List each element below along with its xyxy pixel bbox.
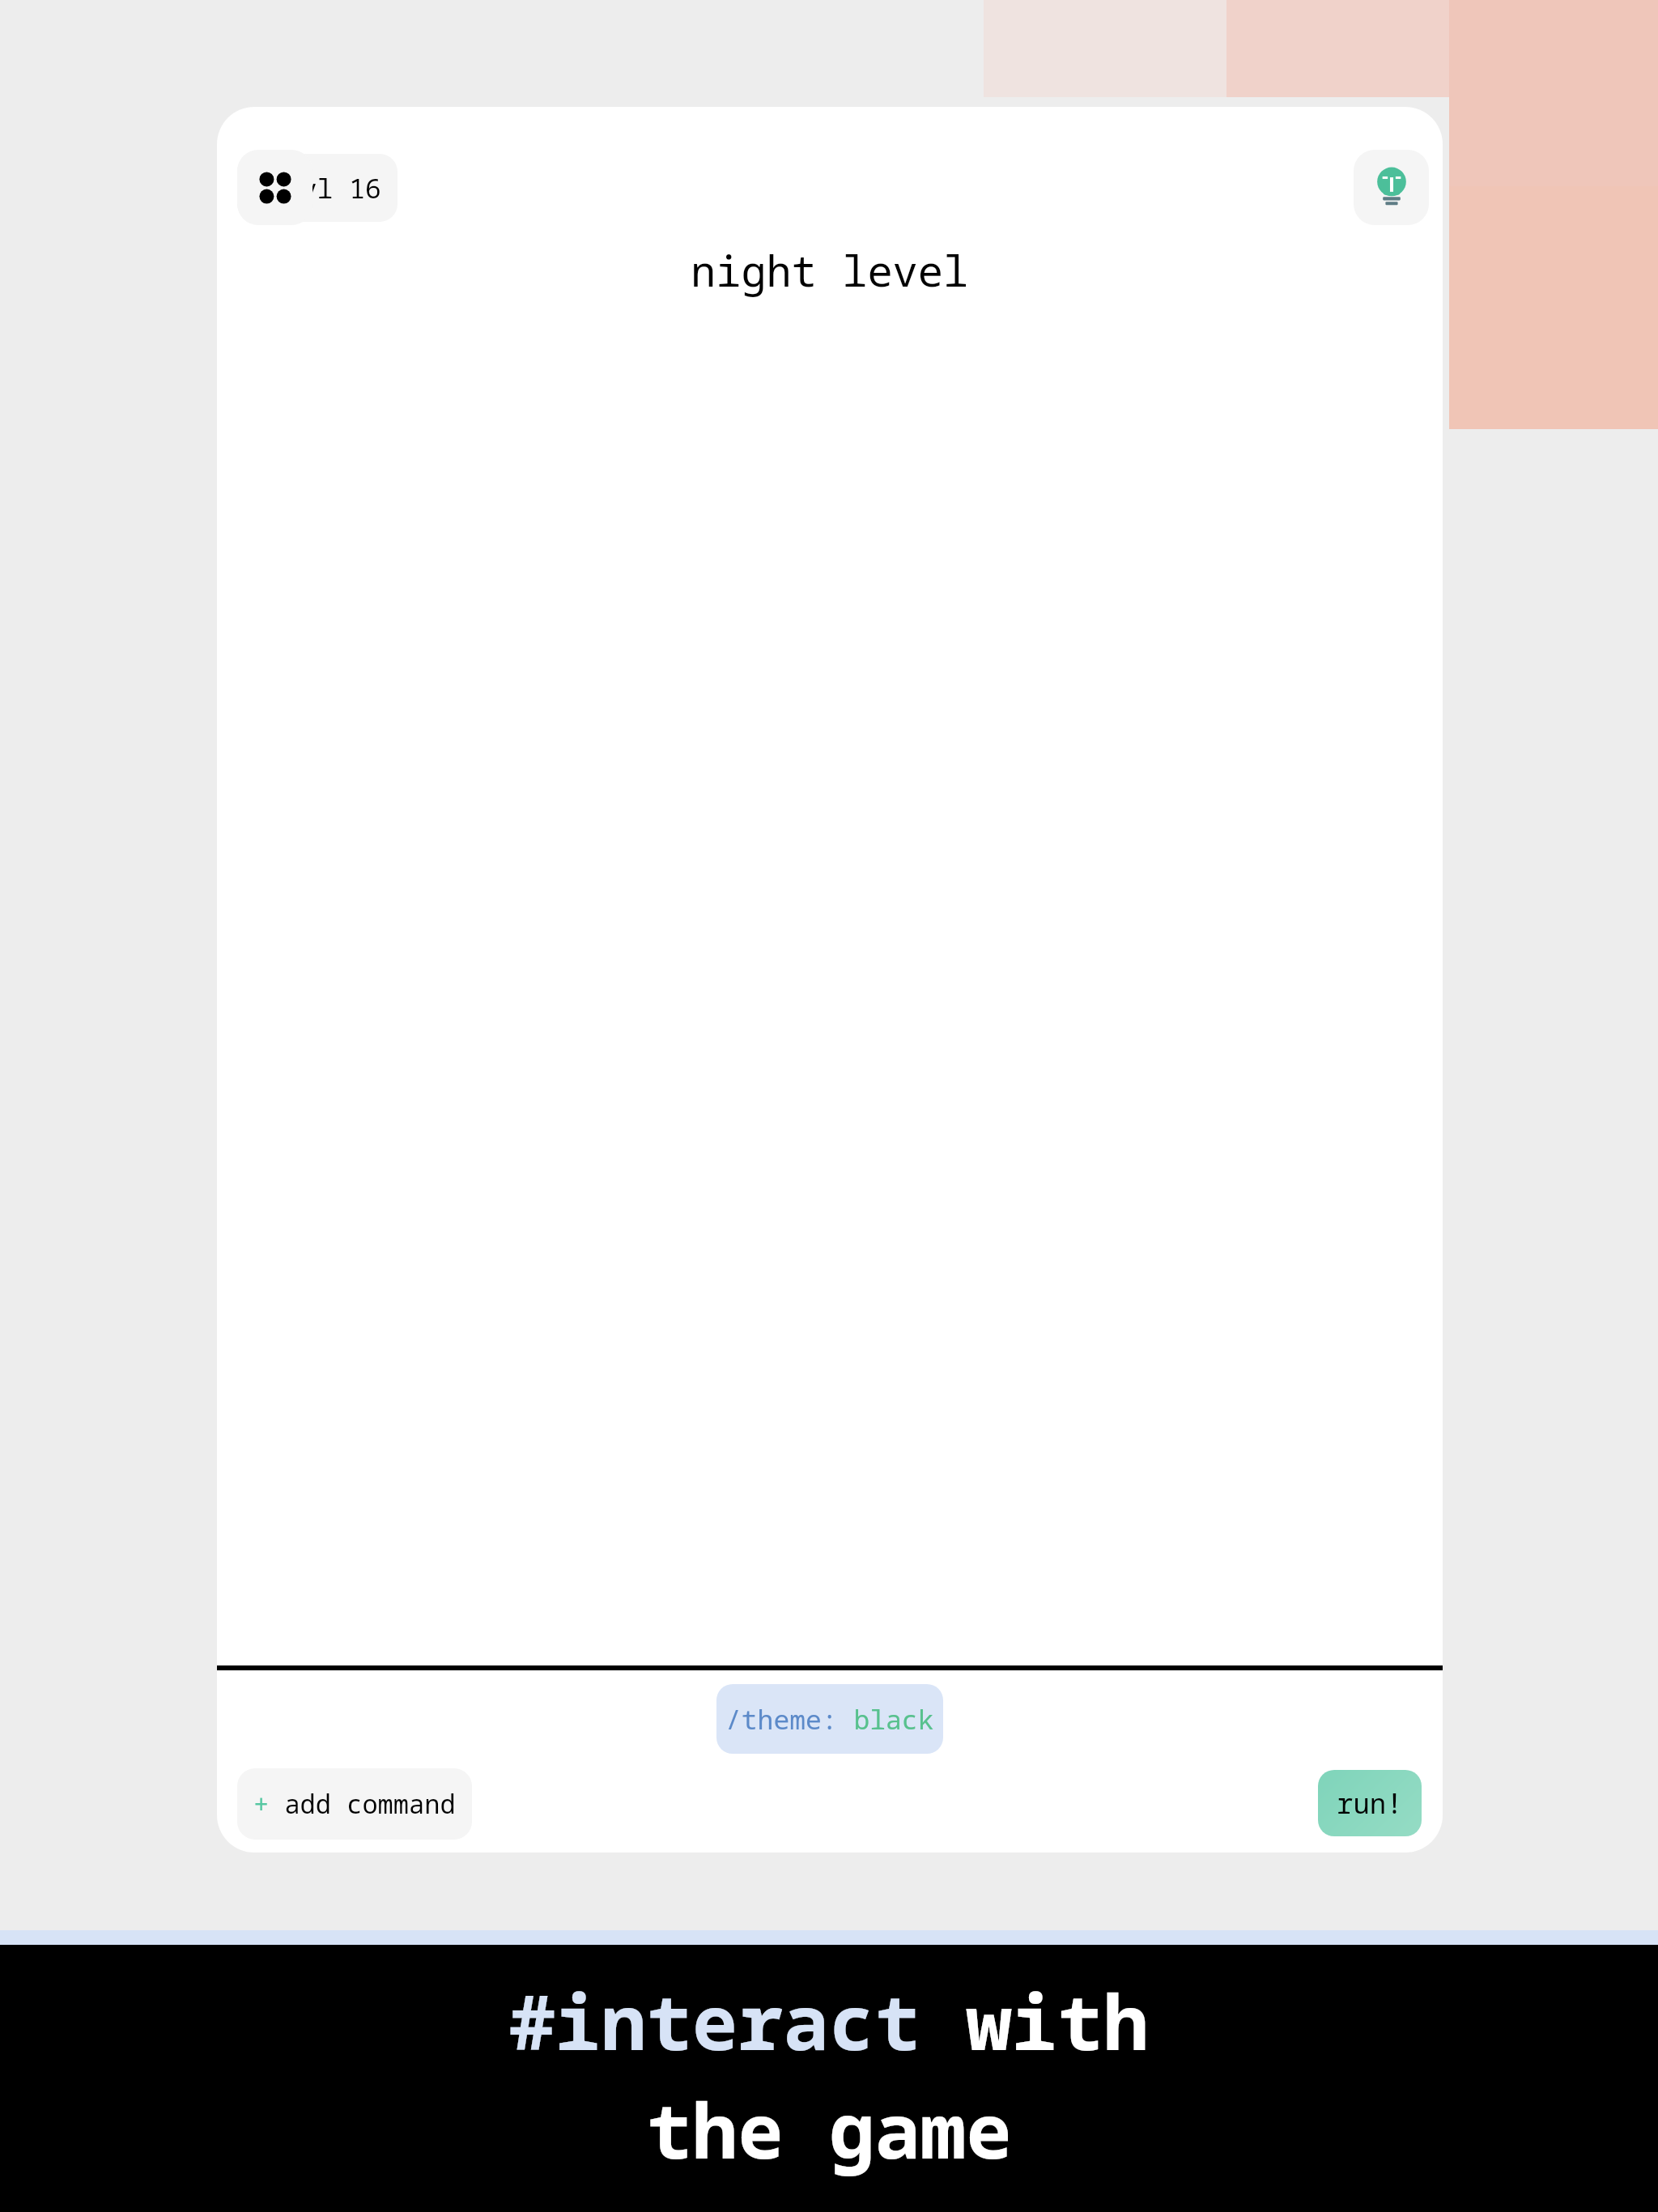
button[interactable]: lvl 16 [237, 154, 397, 222]
staticText: the game [646, 2078, 1012, 2181]
button[interactable]: run! [1318, 1770, 1422, 1836]
staticText: #interact with [509, 1969, 1149, 2073]
button[interactable]: + add command [237, 1768, 472, 1840]
staticText: run! [1337, 1784, 1403, 1822]
button[interactable]: /theme: black [716, 1684, 943, 1754]
staticText: lvl 16 [285, 170, 381, 206]
staticText: + add command [253, 1786, 456, 1822]
staticText: night level [691, 241, 969, 299]
button[interactable]: Levels [237, 150, 312, 225]
staticText: /theme: black [725, 1701, 934, 1738]
button[interactable]: Hint [1354, 150, 1429, 225]
